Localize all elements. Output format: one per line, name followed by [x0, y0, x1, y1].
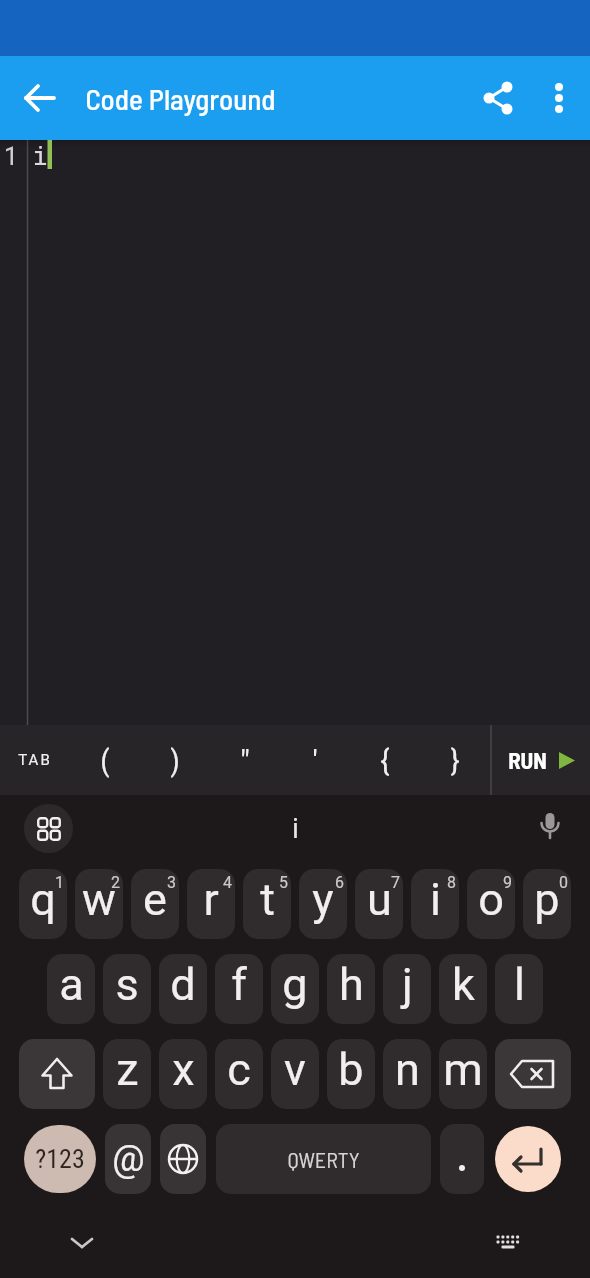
button[interactable]: e	[131, 869, 179, 939]
staticText: u	[367, 873, 392, 926]
button[interactable]: z	[103, 1039, 151, 1109]
button[interactable]: g	[271, 954, 319, 1024]
button[interactable]: i	[411, 869, 459, 939]
button[interactable]: r	[187, 869, 235, 939]
staticText: d	[170, 958, 196, 1011]
staticText: i	[32, 139, 48, 172]
button[interactable]: QWERTY	[216, 1124, 431, 1194]
button[interactable]	[486, 1226, 530, 1258]
staticText: g	[282, 958, 308, 1011]
button[interactable]: m	[439, 1039, 487, 1109]
button[interactable]: {	[350, 725, 420, 795]
staticText: j	[402, 958, 413, 1011]
button[interactable]	[12, 56, 68, 140]
button[interactable]: q	[19, 869, 67, 939]
staticText: 2	[111, 873, 120, 892]
button[interactable]	[19, 1039, 95, 1109]
staticText: RUN	[508, 746, 547, 774]
button[interactable]: t	[243, 869, 291, 939]
staticText: 5	[279, 873, 288, 892]
button[interactable]: n	[383, 1039, 431, 1109]
staticText: a	[59, 958, 84, 1011]
staticText: {	[380, 743, 390, 778]
staticText: b	[338, 1043, 364, 1096]
button[interactable]: b	[327, 1039, 375, 1109]
staticText: v	[284, 1043, 306, 1096]
staticText: 1	[3, 139, 19, 172]
button[interactable]: u	[355, 869, 403, 939]
button[interactable]: d	[159, 954, 207, 1024]
button[interactable]: y	[299, 869, 347, 939]
button[interactable]	[528, 56, 590, 140]
staticText: 1	[55, 873, 64, 892]
staticText: }	[450, 743, 460, 778]
staticText: c	[227, 1043, 251, 1096]
button[interactable]: i	[0, 791, 590, 865]
button[interactable]	[160, 1124, 206, 1194]
button[interactable]: k	[439, 954, 487, 1024]
staticText: l	[514, 958, 525, 1011]
staticText: y	[312, 873, 334, 926]
button[interactable]: j	[383, 954, 431, 1024]
staticText: s	[115, 958, 139, 1011]
button[interactable]: l	[495, 954, 543, 1024]
staticText: TAB	[18, 751, 52, 769]
staticText: QWERTY	[287, 1146, 360, 1172]
button[interactable]	[24, 804, 73, 853]
button[interactable]: RUN	[492, 725, 590, 795]
staticText: w	[82, 873, 116, 926]
button[interactable]: h	[327, 954, 375, 1024]
staticText: k	[452, 958, 475, 1011]
button[interactable]: x	[159, 1039, 207, 1109]
staticText: ?123	[35, 1144, 85, 1174]
staticText: 7	[391, 873, 400, 892]
staticText: z	[116, 1043, 139, 1096]
staticText: h	[339, 958, 364, 1011]
staticText: 9	[503, 873, 512, 892]
staticText: (	[100, 743, 110, 778]
staticText: 0	[559, 873, 568, 892]
staticText: 8	[447, 873, 456, 892]
staticText: r	[203, 873, 219, 926]
button[interactable]: '	[280, 725, 350, 795]
button[interactable]: }	[420, 725, 490, 795]
staticText: f	[231, 958, 247, 1011]
button[interactable]: v	[271, 1039, 319, 1109]
staticText: x	[172, 1043, 195, 1096]
staticText: 3	[167, 873, 176, 892]
button[interactable]: o	[467, 869, 515, 939]
staticText: i	[430, 873, 441, 926]
staticText: e	[143, 873, 167, 926]
button[interactable]: @	[105, 1124, 151, 1194]
button[interactable]: "	[210, 725, 280, 795]
button[interactable]: p	[523, 869, 571, 939]
staticText: 4	[223, 873, 232, 892]
staticText: n	[395, 1043, 420, 1096]
button[interactable]: w	[75, 869, 123, 939]
staticText: 6	[335, 873, 344, 892]
button[interactable]	[495, 1039, 571, 1109]
button[interactable]: (	[70, 725, 140, 795]
button[interactable]	[60, 1227, 104, 1259]
button[interactable]: a	[47, 954, 95, 1024]
staticText: "	[240, 743, 250, 778]
button[interactable]: )	[140, 725, 210, 795]
staticText: Code Playground	[85, 81, 276, 116]
staticText: m	[443, 1043, 483, 1096]
staticText: t	[260, 873, 275, 926]
staticText: i	[292, 812, 299, 845]
button[interactable]	[468, 56, 528, 140]
button[interactable]: s	[103, 954, 151, 1024]
button[interactable]: c	[215, 1039, 263, 1109]
staticText: q	[30, 873, 56, 926]
staticText: o	[478, 873, 504, 926]
staticText: @	[112, 1138, 145, 1180]
staticText: )	[170, 743, 180, 778]
button[interactable]	[533, 810, 567, 844]
staticText: p	[534, 873, 560, 926]
button[interactable]: ?123	[24, 1125, 96, 1193]
button[interactable]: f	[215, 954, 263, 1024]
button[interactable]: TAB	[0, 725, 70, 795]
button[interactable]	[495, 1126, 561, 1192]
button[interactable]	[440, 1124, 484, 1194]
